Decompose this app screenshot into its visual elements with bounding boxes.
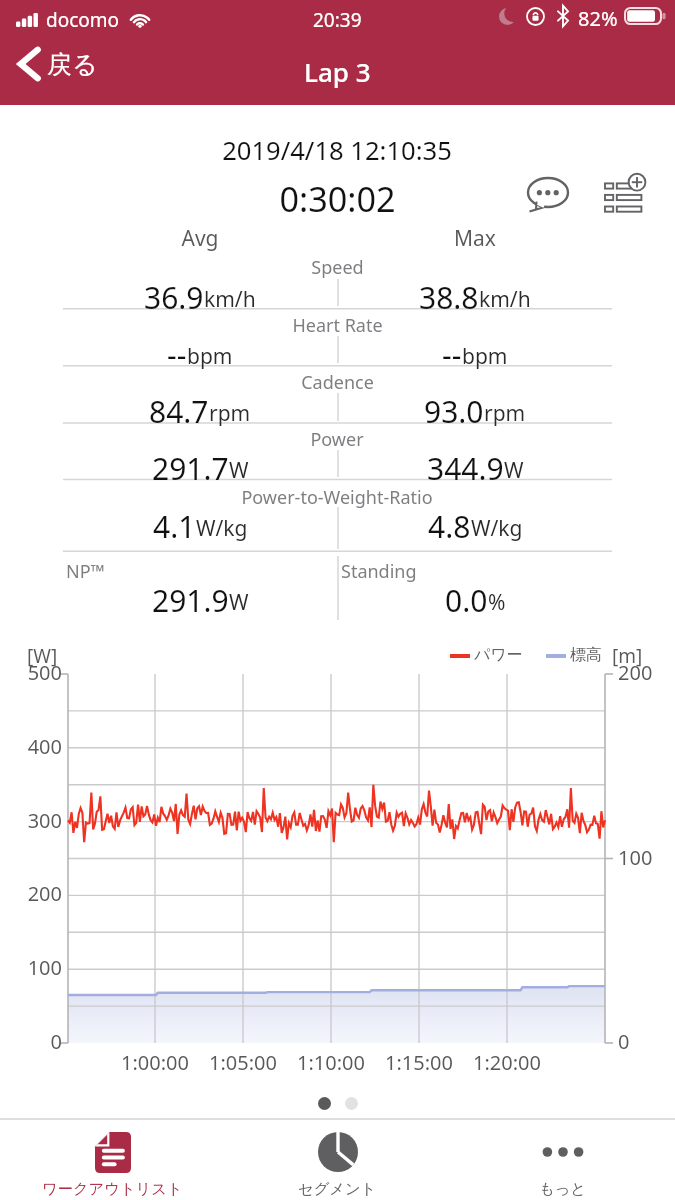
- staticText: 4.1: [153, 506, 196, 547]
- staticText: 100: [618, 844, 670, 871]
- staticText: W: [229, 588, 249, 617]
- staticText: 38.8: [419, 277, 479, 318]
- staticText: もっと: [539, 1179, 586, 1198]
- staticText: Heart Rate: [292, 313, 383, 338]
- staticText: 500: [10, 659, 62, 686]
- staticText: 300: [10, 807, 62, 834]
- staticText: [W]: [27, 643, 58, 669]
- staticText: Cadence: [301, 370, 374, 395]
- button[interactable]: Comments: [514, 166, 582, 224]
- staticText: 標高: [570, 645, 602, 665]
- staticText: NP™: [66, 559, 105, 584]
- staticText: 0: [618, 1028, 670, 1055]
- staticText: 4.8: [428, 506, 471, 547]
- staticText: パワー: [474, 645, 523, 665]
- staticText: 1:10:00: [281, 1049, 381, 1076]
- staticText: 0:30:02: [279, 175, 396, 222]
- button[interactable]: ワークアウトリスト: [0, 1120, 225, 1200]
- staticText: %: [488, 588, 506, 617]
- staticText: W: [229, 456, 249, 485]
- button[interactable]: セグメント: [225, 1120, 450, 1200]
- staticText: 20:39: [313, 7, 362, 33]
- button[interactable]: 戻る: [10, 42, 110, 86]
- staticText: 82%: [578, 5, 618, 32]
- staticText: Power-to-Weight-Ratio: [241, 485, 433, 510]
- staticText: km/h: [479, 285, 531, 314]
- button[interactable]: もっと: [450, 1120, 675, 1200]
- staticText: Lap 3: [304, 54, 371, 89]
- staticText: 100: [10, 954, 62, 981]
- staticText: セグメント: [298, 1179, 377, 1198]
- staticText: 200: [10, 880, 62, 907]
- staticText: 36.9: [144, 277, 204, 318]
- staticText: Power: [310, 427, 364, 452]
- staticText: docomo: [46, 7, 120, 33]
- staticText: 1:00:00: [105, 1049, 205, 1076]
- staticText: rpm: [484, 399, 526, 428]
- staticText: 1:05:00: [193, 1049, 293, 1076]
- staticText: 291.7: [152, 448, 229, 489]
- staticText: km/h: [204, 285, 256, 314]
- staticText: 200: [618, 659, 670, 686]
- staticText: bpm: [462, 342, 508, 371]
- staticText: 1:20:00: [457, 1049, 557, 1076]
- staticText: 344.9: [427, 448, 504, 489]
- staticText: ワークアウトリスト: [42, 1179, 183, 1198]
- staticText: 0.0: [445, 580, 488, 621]
- staticText: rpm: [209, 399, 251, 428]
- staticText: 84.7: [149, 391, 209, 432]
- staticText: W: [504, 456, 524, 485]
- staticText: W/kg: [196, 514, 248, 543]
- staticText: 0: [10, 1028, 62, 1055]
- staticText: Speed: [311, 255, 364, 280]
- staticText: bpm: [187, 342, 233, 371]
- staticText: Avg: [181, 224, 219, 253]
- staticText: --: [442, 334, 462, 375]
- staticText: 93.0: [424, 391, 484, 432]
- staticText: 1:15:00: [369, 1049, 469, 1076]
- staticText: 400: [10, 733, 62, 760]
- staticText: --: [167, 334, 187, 375]
- staticText: 2019/4/18 12:10:35: [222, 133, 452, 168]
- staticText: [m]: [612, 643, 643, 669]
- staticText: 291.9: [152, 580, 229, 621]
- button[interactable]: Add to list: [590, 166, 658, 224]
- staticText: Max: [454, 224, 496, 253]
- staticText: 戻る: [47, 49, 98, 80]
- staticText: W/kg: [471, 514, 523, 543]
- staticText: Standing: [341, 559, 417, 584]
